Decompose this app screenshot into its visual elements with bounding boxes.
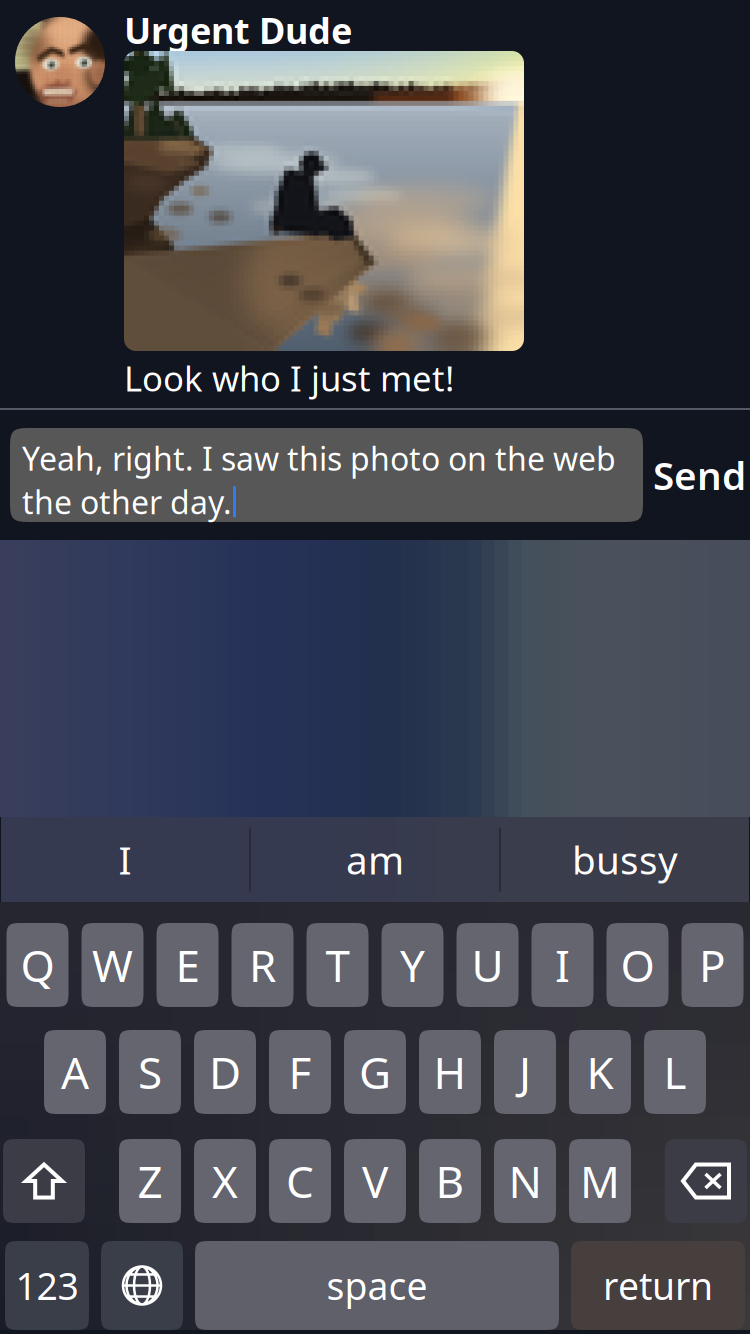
button[interactable]: K bbox=[569, 1030, 631, 1114]
staticText: Send bbox=[653, 449, 746, 501]
staticText: Z bbox=[137, 1152, 162, 1210]
staticText: V bbox=[362, 1152, 388, 1210]
staticText: E bbox=[175, 936, 199, 994]
button[interactable]: I bbox=[531, 923, 593, 1007]
staticText: Yeah, right. I saw this photo on the web bbox=[22, 437, 616, 479]
staticText: P bbox=[699, 936, 726, 994]
staticText: K bbox=[586, 1043, 613, 1101]
button[interactable]: C bbox=[269, 1139, 331, 1223]
button[interactable]: G bbox=[344, 1030, 406, 1114]
button[interactable]: R bbox=[231, 923, 293, 1007]
button[interactable]: Delete bbox=[665, 1139, 747, 1223]
staticText: X bbox=[212, 1152, 238, 1210]
staticText: A bbox=[61, 1043, 89, 1101]
button[interactable]: Next keyboard bbox=[101, 1241, 183, 1330]
staticText: B bbox=[435, 1152, 464, 1210]
staticText: am bbox=[346, 834, 404, 885]
staticText: I bbox=[555, 936, 570, 994]
button[interactable]: H bbox=[419, 1030, 481, 1114]
staticText: R bbox=[249, 936, 276, 994]
button[interactable]: Send bbox=[643, 428, 750, 522]
button[interactable]: E bbox=[156, 923, 218, 1007]
button[interactable]: Z bbox=[119, 1139, 181, 1223]
staticText: S bbox=[138, 1043, 162, 1101]
button[interactable]: O bbox=[606, 923, 668, 1007]
staticText: T bbox=[325, 936, 349, 994]
staticText: Look who I just met! bbox=[124, 355, 454, 401]
button[interactable]: Y bbox=[381, 923, 443, 1007]
staticText: return bbox=[603, 1261, 713, 1310]
staticText: N bbox=[508, 1152, 541, 1210]
staticText: W bbox=[92, 936, 133, 994]
staticText: F bbox=[288, 1043, 311, 1101]
staticText: the other day. bbox=[22, 480, 232, 523]
staticText: Urgent Dude bbox=[124, 6, 352, 54]
staticText: G bbox=[359, 1043, 391, 1101]
button[interactable]: B bbox=[419, 1139, 481, 1223]
staticText: space bbox=[326, 1261, 427, 1310]
button[interactable]: V bbox=[344, 1139, 406, 1223]
staticText: Y bbox=[400, 936, 425, 994]
button[interactable]: Q bbox=[6, 923, 68, 1007]
staticText: H bbox=[433, 1043, 466, 1101]
button[interactable]: space bbox=[195, 1241, 559, 1330]
button[interactable]: N bbox=[494, 1139, 556, 1223]
staticText: U bbox=[471, 936, 503, 994]
staticText: J bbox=[519, 1043, 531, 1101]
staticText: Q bbox=[20, 936, 54, 994]
button[interactable]: D bbox=[194, 1030, 256, 1114]
button[interactable]: Yeah, right. I saw this photo on the web bbox=[0, 428, 643, 522]
button[interactable]: M bbox=[569, 1139, 631, 1223]
staticText: L bbox=[663, 1043, 686, 1101]
button[interactable]: am bbox=[251, 817, 499, 902]
staticText: 123 bbox=[15, 1261, 78, 1310]
staticText: C bbox=[286, 1152, 314, 1210]
button[interactable]: T bbox=[306, 923, 368, 1007]
button[interactable]: S bbox=[119, 1030, 181, 1114]
button[interactable]: U bbox=[456, 923, 518, 1007]
button[interactable]: X bbox=[194, 1139, 256, 1223]
button[interactable]: 123 bbox=[5, 1241, 89, 1330]
staticText: I bbox=[118, 834, 131, 885]
button[interactable]: bussy bbox=[501, 817, 749, 902]
button[interactable]: A bbox=[44, 1030, 106, 1114]
staticText: D bbox=[209, 1043, 241, 1101]
staticText: M bbox=[580, 1152, 620, 1210]
button[interactable]: return bbox=[571, 1241, 745, 1330]
staticText: O bbox=[620, 936, 654, 994]
button[interactable]: F bbox=[269, 1030, 331, 1114]
button[interactable]: P bbox=[681, 923, 743, 1007]
staticText: bussy bbox=[572, 834, 678, 885]
button[interactable]: Shift bbox=[3, 1139, 85, 1223]
button[interactable]: J bbox=[494, 1030, 556, 1114]
button[interactable]: W bbox=[81, 923, 143, 1007]
button[interactable]: I bbox=[1, 817, 249, 902]
button[interactable]: L bbox=[644, 1030, 706, 1114]
